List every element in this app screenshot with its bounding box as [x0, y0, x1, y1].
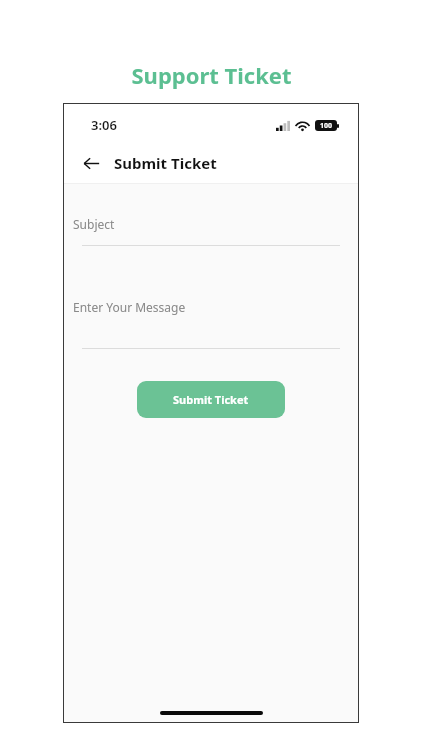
- button[interactable]: Enter Your Message: [73, 299, 359, 315]
- button[interactable]: Subject: [73, 216, 359, 232]
- staticText: Submit Ticket: [173, 392, 249, 407]
- button[interactable]: Submit Ticket: [137, 381, 285, 418]
- button[interactable]: Back: [73, 145, 109, 181]
- staticText: Support Ticket: [131, 60, 292, 90]
- staticText: 3:06: [91, 116, 117, 134]
- staticText: 100: [320, 121, 333, 131]
- staticText: Submit Ticket: [114, 153, 217, 173]
- staticText: Enter Your Message: [73, 299, 186, 315]
- staticText: Subject: [73, 216, 115, 232]
